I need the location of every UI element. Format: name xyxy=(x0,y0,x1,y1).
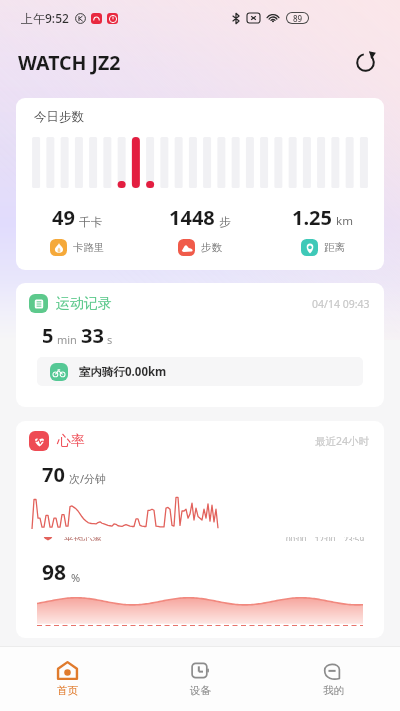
button[interactable]: 室内骑行0.00km xyxy=(37,357,363,386)
staticText: km xyxy=(336,213,353,229)
staticText: 心率 xyxy=(57,432,85,450)
button[interactable]: 首页 xyxy=(0,647,134,711)
staticText: 98 xyxy=(42,558,67,587)
button[interactable]: 心率 xyxy=(16,421,384,638)
staticText: 运动记录 xyxy=(56,295,112,313)
staticText: 次/分钟 xyxy=(69,471,107,486)
staticText: 00:00 12:00 23:59 xyxy=(286,537,364,541)
staticText: 上午9:52 xyxy=(21,10,69,26)
button[interactable]: 设备 xyxy=(134,647,267,711)
staticText: 最近24小时 xyxy=(315,434,370,448)
staticText: 距离 xyxy=(324,241,345,254)
staticText: 设备 xyxy=(190,684,211,697)
staticText: WATCH JZ2 xyxy=(18,49,121,76)
button[interactable]: 1.25 xyxy=(261,204,384,256)
staticText: 33 xyxy=(81,322,104,349)
staticText: % xyxy=(71,570,81,585)
staticText: 5 xyxy=(42,322,54,349)
staticText: s xyxy=(107,332,113,347)
staticText: 89 xyxy=(293,13,303,23)
staticText: 首页 xyxy=(57,684,78,697)
staticText: 70 xyxy=(42,461,65,488)
staticText: 我的 xyxy=(323,684,344,697)
staticText: 室内骑行0.00km xyxy=(79,364,167,380)
staticText: 步数 xyxy=(201,241,222,254)
staticText: 1448 xyxy=(169,204,215,231)
staticText: 卡路里 xyxy=(73,241,105,254)
button[interactable]: 我的 xyxy=(267,647,400,711)
button[interactable]: Refresh xyxy=(344,41,386,83)
staticText: 步 xyxy=(219,215,231,229)
staticText: 今日步数 xyxy=(34,109,84,125)
button[interactable]: 49 xyxy=(16,204,138,256)
button[interactable]: 今日步数 xyxy=(16,98,384,270)
staticText: 千卡 xyxy=(79,215,102,229)
button[interactable]: 运动记录 xyxy=(16,283,384,407)
button[interactable]: 1448 xyxy=(138,204,261,256)
staticText: min xyxy=(57,332,77,347)
staticText: 1.25 xyxy=(292,204,332,231)
staticText: 49 xyxy=(52,204,75,231)
staticText: 平均心率 xyxy=(64,537,102,541)
staticText: 04/14 09:43 xyxy=(312,297,370,311)
